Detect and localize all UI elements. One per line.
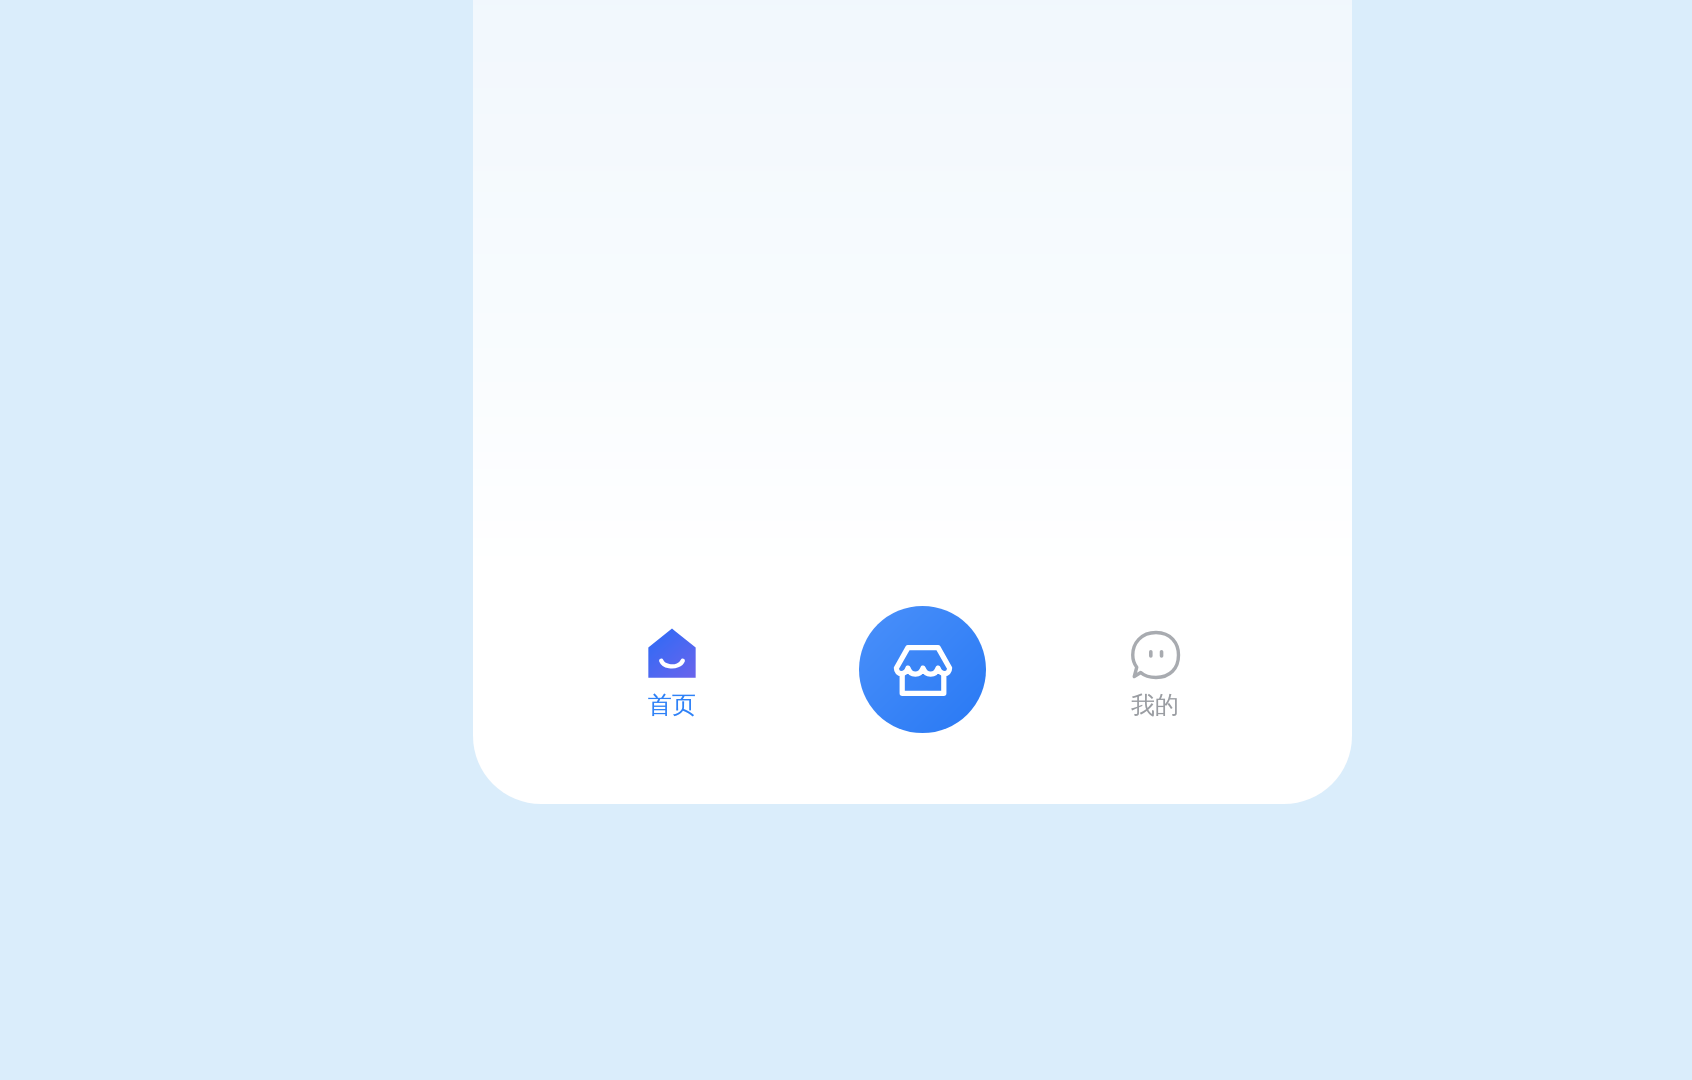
- button[interactable]: 首页: [612, 630, 732, 740]
- staticText: 首页: [648, 690, 696, 720]
- button[interactable]: 商城: [859, 606, 986, 733]
- button[interactable]: 我的: [1095, 630, 1215, 740]
- staticText: 我的: [1131, 690, 1179, 720]
